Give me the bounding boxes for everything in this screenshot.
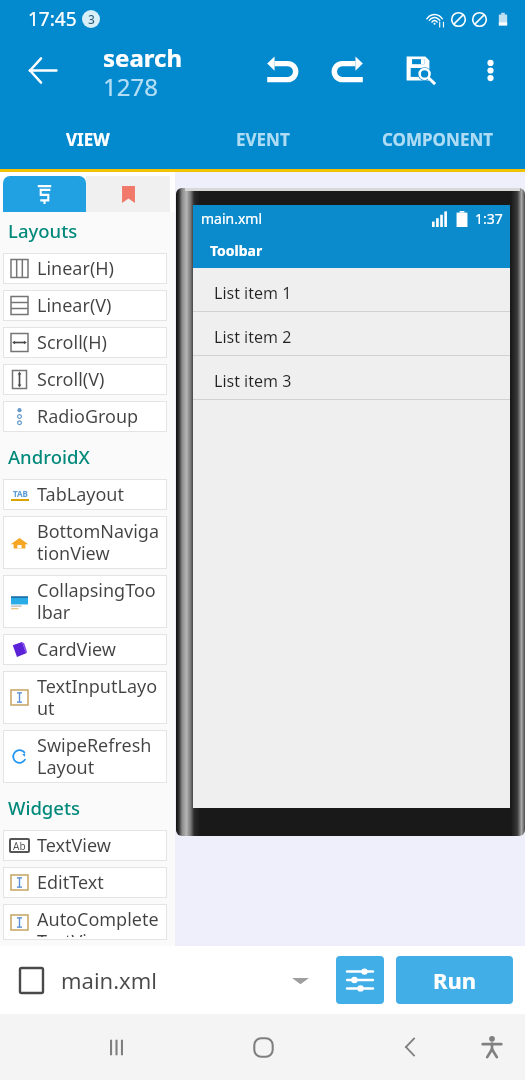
staticText: main.xml <box>61 965 157 995</box>
button[interactable]: EditText <box>3 867 167 898</box>
staticText: Widgets <box>8 795 81 820</box>
button[interactable]: Home <box>231 1015 295 1079</box>
staticText: main.xml <box>201 209 263 228</box>
button[interactable]: Undo <box>256 46 304 94</box>
button[interactable]: TAB <box>3 479 167 510</box>
staticText: EVENT <box>236 128 290 151</box>
button[interactable]: TextInputLayout <box>3 671 167 724</box>
button[interactable]: Back <box>18 46 66 94</box>
staticText: Layouts <box>8 218 78 243</box>
staticText: TextView <box>37 833 111 858</box>
button[interactable]: Scroll(H) <box>3 327 167 358</box>
button[interactable]: Scroll(V) <box>3 364 167 395</box>
staticText: 17:45 <box>28 6 77 32</box>
staticText: Scroll(V) <box>37 367 105 392</box>
button[interactable]: Back <box>378 1015 442 1079</box>
staticText: CardView <box>37 637 117 662</box>
staticText: search <box>103 41 182 74</box>
button[interactable]: RadioGroup <box>3 401 167 432</box>
staticText: List item 1 <box>214 282 292 304</box>
staticText: TextInputLayout <box>37 674 160 721</box>
button[interactable]: CardView <box>3 634 167 665</box>
button[interactable]: BottomNavigationView <box>3 516 167 569</box>
staticText: Run <box>433 965 477 995</box>
staticText: CollapsingToolbar <box>37 578 160 625</box>
staticText: EditText <box>37 870 104 895</box>
staticText: COMPONENT <box>382 128 494 151</box>
staticText: 1:37 <box>475 209 503 228</box>
button[interactable]: Ab <box>3 830 167 861</box>
button[interactable]: COMPONENT <box>350 116 525 163</box>
button[interactable]: CollapsingToolbar <box>3 575 167 628</box>
button[interactable]: Linear(H) <box>3 253 167 284</box>
staticText: AutoCompleteTextView <box>37 907 160 937</box>
button[interactable]: More options <box>468 48 512 92</box>
staticText: 3 <box>88 11 95 27</box>
staticText: Linear(H) <box>37 256 115 281</box>
staticText: List item 3 <box>214 370 292 392</box>
button[interactable]: Accessibility <box>460 1015 524 1079</box>
button[interactable]: Favorites <box>86 176 170 212</box>
staticText: SwipeRefreshLayout <box>37 733 160 780</box>
staticText: 1278 <box>103 70 158 103</box>
button[interactable]: main.xml <box>0 955 312 1005</box>
staticText: Scroll(H) <box>37 330 107 355</box>
staticText: VIEW <box>66 128 110 151</box>
staticText: Toolbar <box>210 241 263 260</box>
button[interactable]: Save as <box>397 46 445 94</box>
staticText: Linear(V) <box>37 293 112 318</box>
staticText: List item 2 <box>214 326 292 348</box>
button[interactable]: EVENT <box>175 116 350 163</box>
button[interactable]: Recents <box>84 1015 148 1079</box>
staticText: BottomNavigationView <box>37 519 160 566</box>
staticText: AndroidX <box>8 444 90 469</box>
button[interactable]: Run <box>396 956 513 1004</box>
button[interactable]: Linear(V) <box>3 290 167 321</box>
button[interactable]: VIEW <box>0 116 175 163</box>
button[interactable]: Redo <box>326 46 374 94</box>
button[interactable]: AutoCompleteTextView <box>3 904 167 940</box>
staticText: RadioGroup <box>37 404 139 429</box>
staticText: Ab <box>13 839 26 853</box>
button[interactable]: Widgets <box>3 176 86 212</box>
staticText: TAB <box>13 488 28 499</box>
staticText: TabLayout <box>37 482 124 507</box>
button[interactable]: Settings <box>336 956 384 1004</box>
button[interactable]: SwipeRefreshLayout <box>3 730 167 783</box>
